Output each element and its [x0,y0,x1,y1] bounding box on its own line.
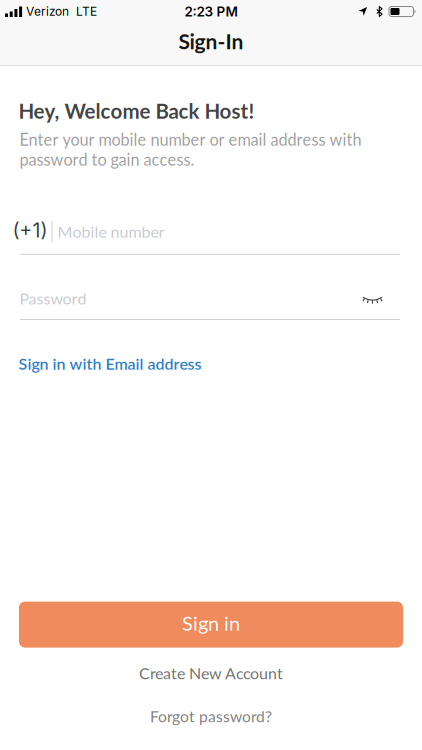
staticText: Password [19,289,86,308]
staticText: Sign in [182,611,240,635]
staticText: Create New Account [139,664,283,683]
staticText: LTE [76,4,97,19]
staticText: Verizon [26,4,69,19]
staticText: (+1) [12,219,47,242]
staticText: Sign in with Email address [18,354,201,373]
staticText: Enter your mobile number or email addres… [19,130,361,149]
staticText: Mobile number [57,222,164,241]
staticText: Sign-In [178,28,243,54]
staticText: password to gain access. [19,150,194,169]
staticText: 2:23 PM [184,3,237,20]
staticText: Forgot password? [150,707,272,725]
staticText: Hey, Welcome Back Host! [18,98,254,123]
